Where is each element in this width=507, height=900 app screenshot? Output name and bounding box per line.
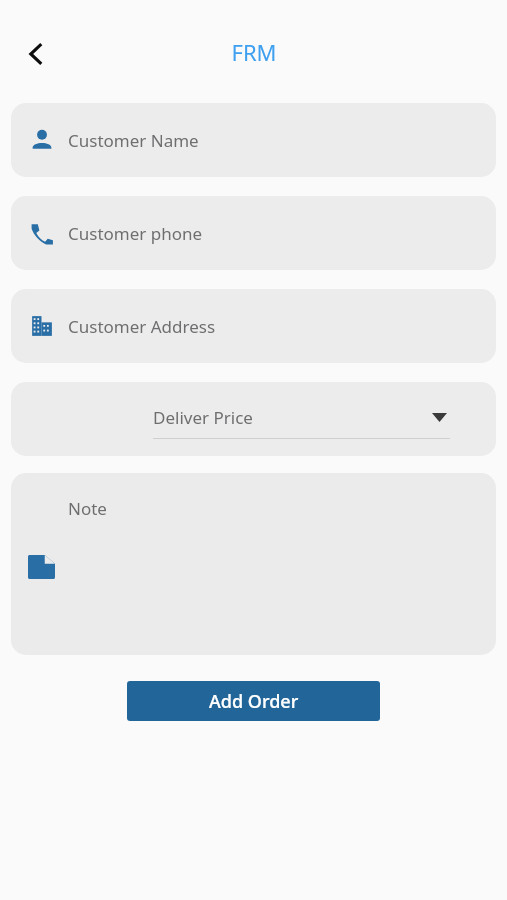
staticText: Note	[68, 497, 107, 520]
button[interactable]: Customer Name	[11, 103, 496, 177]
staticText: Add Order	[209, 689, 299, 714]
button[interactable]: Customer phone	[11, 196, 496, 270]
button[interactable]: Back	[14, 32, 58, 76]
staticText: Deliver Price	[153, 406, 253, 429]
button[interactable]: Add Order	[127, 681, 380, 721]
button[interactable]: Deliver Price	[153, 406, 450, 439]
staticText: Customer phone	[68, 222, 203, 245]
staticText: Customer Address	[68, 315, 216, 338]
staticText: Customer Name	[68, 129, 199, 152]
button[interactable]: Note	[11, 473, 496, 655]
button[interactable]: Customer Address	[11, 289, 496, 363]
staticText: FRM	[231, 37, 277, 67]
